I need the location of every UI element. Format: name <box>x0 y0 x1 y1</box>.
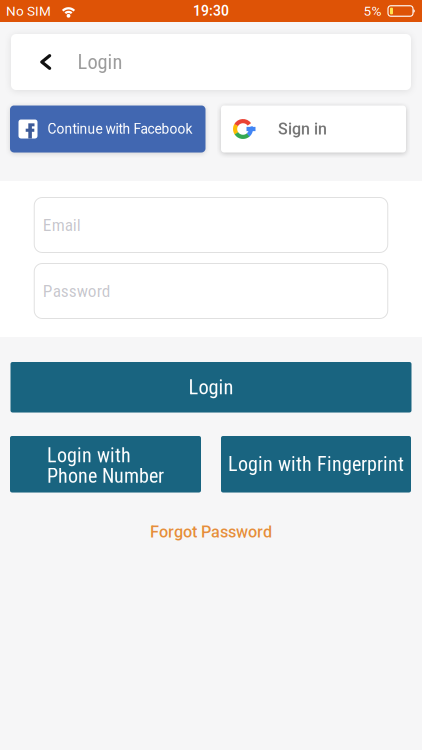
staticText: 19:30 <box>193 3 229 19</box>
staticText: No SIM <box>6 3 51 19</box>
button[interactable]: Back <box>11 34 65 90</box>
staticText: Sign in <box>278 120 327 138</box>
staticText: Continue with Facebook <box>47 121 192 137</box>
staticText: Password <box>43 281 111 301</box>
staticText: Email <box>43 215 81 235</box>
staticText: 5% <box>363 3 381 19</box>
button[interactable]: Login with <box>10 436 201 492</box>
button[interactable]: Forgot Password <box>150 522 272 542</box>
button[interactable]: Sign in <box>221 105 406 152</box>
button[interactable]: Continue with Facebook <box>10 105 205 152</box>
button[interactable]: Login with Fingerprint <box>221 436 411 492</box>
staticText: Login <box>77 50 122 74</box>
staticText: Login <box>188 375 233 399</box>
staticText: Phone Number <box>47 464 164 488</box>
button[interactable]: Email <box>34 197 388 252</box>
button[interactable]: Password <box>34 263 388 318</box>
button[interactable]: Login <box>10 362 411 412</box>
staticText: Forgot Password <box>150 522 272 542</box>
staticText: Login with <box>47 444 131 467</box>
staticText: Login with Fingerprint <box>228 452 404 476</box>
